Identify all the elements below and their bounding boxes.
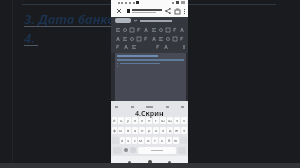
button[interactable]: Format tool [122, 36, 127, 41]
button[interactable]: у [125, 117, 131, 124]
staticText: ю [174, 138, 178, 143]
button[interactable]: б [166, 137, 172, 144]
button[interactable]: в [125, 127, 131, 134]
staticText: я [121, 138, 124, 143]
button[interactable]: ф [112, 127, 117, 134]
staticText: щ [168, 118, 172, 123]
button[interactable]: Style [115, 18, 131, 23]
button[interactable]: Home [148, 160, 152, 164]
button[interactable]: Back [128, 161, 131, 164]
staticText: к [134, 118, 137, 123]
button[interactable]: Format tool [131, 44, 136, 49]
button[interactable]: т [152, 137, 158, 144]
button[interactable]: ж [174, 127, 180, 134]
button[interactable]: с [132, 137, 137, 144]
staticText: ф [113, 128, 116, 133]
button[interactable]: Format tool [165, 27, 170, 32]
button[interactable]: Format tool [179, 27, 184, 32]
button[interactable]: Format tool [143, 27, 148, 32]
button[interactable]: Print [172, 6, 182, 16]
button[interactable]: Format tool [115, 36, 120, 41]
button[interactable]: х [181, 117, 187, 124]
button[interactable]: Format tool [172, 27, 177, 32]
button[interactable]: Format tool [129, 36, 134, 41]
staticText: з [176, 118, 178, 123]
button[interactable]: Format tool [151, 36, 156, 41]
button[interactable]: Format tool [143, 36, 148, 41]
button[interactable]: Format tool [158, 36, 163, 41]
button[interactable]: Format tool [115, 44, 120, 49]
button[interactable]: р [146, 127, 152, 134]
staticText: м [139, 138, 143, 143]
button[interactable]: д [167, 127, 173, 134]
button[interactable]: е [139, 117, 145, 124]
staticText: у [127, 118, 130, 123]
staticText: д [169, 128, 172, 133]
button[interactable]: п [139, 127, 145, 134]
button[interactable]: Format tool [158, 27, 163, 32]
button[interactable]: э [181, 127, 187, 134]
button[interactable]: Emoji [130, 147, 136, 153]
button[interactable]: Format tool [136, 27, 141, 32]
staticText: с [134, 138, 136, 143]
button[interactable]: о [153, 127, 159, 134]
button[interactable]: Format tool [163, 44, 168, 49]
button[interactable]: Close [114, 6, 124, 16]
button[interactable]: Format tool [172, 36, 177, 41]
button[interactable]: к [132, 117, 138, 124]
button[interactable]: Recents [168, 161, 171, 164]
button[interactable]: Language [124, 148, 128, 152]
button[interactable]: Format tool [123, 44, 128, 49]
button[interactable]: й [112, 117, 117, 124]
button[interactable]: Space [138, 147, 176, 154]
button[interactable]: Format tool [122, 27, 127, 32]
button[interactable]: Share [163, 6, 173, 16]
button[interactable]: ц [118, 117, 124, 124]
button[interactable]: щ [167, 117, 173, 124]
staticText: б [168, 138, 171, 143]
button[interactable]: ю [173, 137, 179, 144]
staticText: о [155, 128, 158, 133]
button[interactable]: Format tool [151, 27, 156, 32]
button[interactable]: Format tool [155, 44, 160, 49]
button[interactable]: Format tool [179, 36, 184, 41]
button[interactable]: ь [159, 137, 165, 144]
staticText: т [154, 138, 156, 143]
staticText: ы [119, 128, 123, 133]
button[interactable]: Format tool [115, 27, 120, 32]
button[interactable]: 4. [24, 29, 38, 48]
button[interactable]: м [138, 137, 144, 144]
staticText: 4. [24, 29, 35, 47]
staticText: ж [175, 128, 179, 133]
button[interactable]: Format tool [136, 36, 141, 41]
button[interactable]: я [120, 137, 125, 144]
button[interactable]: 3. Дата банков [24, 10, 122, 29]
staticText: ч [127, 138, 130, 143]
button[interactable]: More options [181, 8, 188, 15]
staticText: е [141, 118, 144, 123]
button[interactable]: и [145, 137, 151, 144]
button[interactable]: л [160, 127, 166, 134]
button[interactable]: Format tool [165, 36, 170, 41]
staticText: 3. Дата банков [24, 10, 122, 28]
button[interactable]: Format tool [129, 27, 134, 32]
staticText: ш [161, 118, 165, 123]
button[interactable]: ш [160, 117, 166, 124]
button[interactable]: н [146, 117, 152, 124]
button[interactable]: г [153, 117, 159, 124]
staticText: л [162, 128, 165, 133]
staticText: а [134, 128, 137, 133]
button[interactable]: а [132, 127, 138, 134]
button[interactable]: ы [118, 127, 124, 134]
button[interactable]: з [174, 117, 180, 124]
button[interactable]: ч [126, 137, 131, 144]
